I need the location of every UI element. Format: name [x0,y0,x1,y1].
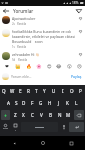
button[interactable]: Shift [1,110,10,120]
button[interactable]: Symbols [0,121,11,133]
staticText: A [7,100,10,106]
staticText: C [31,112,34,118]
button[interactable]: F [28,97,36,109]
staticText: Yorum ekle… [11,74,32,79]
button[interactable]: Home [29,136,57,150]
staticText: Yanıtla [17,22,27,26]
staticText: 🌸 [36,64,42,69]
button[interactable]: 🌸 [34,62,44,71]
button[interactable]: Paylaş [70,73,83,80]
staticText: 😢 [77,64,82,69]
staticText: I [62,88,64,94]
staticText: R [27,88,30,94]
button[interactable]: zehraabdm Hi 👋🏻 [0,52,85,62]
button[interactable]: Enter [69,122,84,132]
staticText: Ajaciwattcuker [12,16,36,21]
staticText: X [22,112,25,118]
button[interactable]: Recents [57,136,85,150]
button[interactable]: O [67,85,76,97]
button[interactable]: L [72,97,81,109]
staticText: , [15,127,16,131]
staticText: 1s [12,45,15,49]
button[interactable]: M [64,109,73,121]
button[interactable]: X [19,109,28,121]
staticText: 18% [72,1,79,5]
button[interactable]: 🔥 [23,62,34,71]
button[interactable]: Z [11,109,19,121]
button[interactable]: Ajaciwattcuker [0,16,85,26]
staticText: D [22,100,26,106]
staticText: V [40,112,43,118]
button[interactable]: Q [0,85,8,97]
button[interactable]: A [4,97,12,109]
staticText: Yanıtla [18,58,28,62]
staticText: U [52,88,56,94]
button[interactable]: K [63,97,72,109]
button[interactable]: 😮 [64,62,74,71]
button[interactable]: Like [77,29,83,35]
button[interactable]: J [54,97,63,109]
button[interactable]: G [36,97,45,109]
staticText: G [39,100,43,106]
staticText: zehraabdm Hi 👋🏻 [12,52,40,57]
staticText: N [58,112,62,118]
button[interactable]: 😢 [74,62,84,71]
staticText: 🔥 [26,64,32,69]
button[interactable]: Back [2,7,10,15]
staticText: kazandirsin, etkilelet ve paylasan cikta… [12,34,75,39]
staticText: ❤️ [5,64,9,69]
staticText: 2s [12,22,15,26]
button[interactable]: V [37,109,46,121]
button[interactable]: T [32,85,40,97]
staticText: T [35,88,38,94]
button[interactable]: N [55,109,64,121]
button[interactable]: 😍 [44,62,54,71]
button[interactable]: Share [75,7,83,15]
staticText: J [58,100,60,106]
button[interactable]: Like [77,52,83,58]
staticText: footballikkka Bunu kuzandinin ve cok [12,29,72,34]
button[interactable]: footballikkka Bunu kuzandinin ve cok [0,29,85,49]
staticText: L [75,100,78,106]
staticText: M [66,112,71,118]
button[interactable]: R [24,85,32,97]
button[interactable]: B [46,109,55,121]
staticText: F [31,100,34,106]
staticText: Yorumlar [13,8,34,14]
button[interactable]: 👑 [12,62,23,71]
staticText: O [70,88,74,94]
staticText: 😍 [47,64,52,69]
button[interactable]: Y [40,85,49,97]
staticText: 😂 [56,64,62,69]
button[interactable]: Space [21,122,58,132]
button[interactable]: U [49,85,58,97]
button[interactable]: W [8,85,16,97]
button[interactable]: Back [0,136,29,150]
staticText: B [49,112,52,118]
staticText: S [15,100,18,106]
button[interactable]: D [20,97,28,109]
button[interactable]: S [12,97,20,109]
button[interactable]: H [45,97,54,109]
staticText: ?123 [3,127,8,130]
button[interactable]: I [58,85,67,97]
staticText: Y [43,88,46,94]
button[interactable]: Comma [11,121,20,133]
button[interactable]: 😂 [54,62,64,71]
staticText: 5d [12,58,16,62]
staticText: Paylaş [71,74,82,79]
button[interactable]: C [28,109,37,121]
staticText: W [10,88,15,94]
button[interactable]: P [76,85,85,97]
button[interactable]: Like [77,16,83,22]
staticText: Q [2,88,6,94]
staticText: Bosunbuuld soon [12,39,43,44]
staticText: Yanıtla [17,45,27,49]
staticText: H [48,100,52,106]
button[interactable]: Backspace [74,110,84,120]
staticText: Z [14,112,17,118]
button[interactable]: ❤️ [1,62,12,71]
button[interactable]: E [16,85,24,97]
button[interactable]: Voice input [59,121,68,133]
staticText: E [19,88,22,94]
